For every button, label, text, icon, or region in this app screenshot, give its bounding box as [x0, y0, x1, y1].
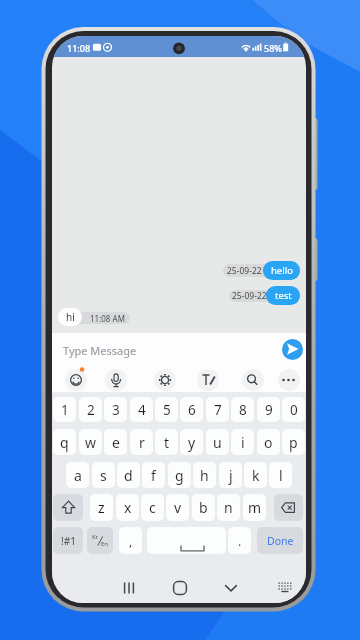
button[interactable]: j [219, 462, 242, 488]
staticText: !#1 [61, 534, 76, 548]
staticText: test [275, 289, 292, 302]
staticText: p [289, 433, 298, 452]
staticText: o [264, 433, 273, 452]
staticText: En [101, 540, 109, 548]
staticText: 9 [265, 401, 273, 419]
button[interactable]: 0 [282, 397, 305, 422]
button[interactable]: o [257, 429, 280, 455]
staticText: h [200, 466, 209, 485]
staticText: u [213, 433, 222, 452]
button[interactable]: 3 [104, 397, 127, 422]
staticText: i [241, 433, 245, 452]
button[interactable] [87, 527, 113, 554]
button[interactable]: test [266, 286, 300, 305]
staticText: n [224, 498, 233, 517]
button[interactable]: z [90, 494, 113, 521]
button[interactable]: 2 [79, 397, 102, 422]
button[interactable] [105, 369, 127, 391]
button[interactable] [197, 369, 219, 391]
staticText: x [124, 498, 132, 517]
staticText: c [149, 498, 156, 517]
button[interactable]: !#1 [53, 527, 83, 554]
staticText: 7 [214, 401, 222, 419]
button[interactable]: m [243, 494, 266, 521]
button[interactable]: 9 [257, 397, 280, 422]
button[interactable]: g [168, 462, 191, 488]
button[interactable]: 7 [206, 397, 229, 422]
button[interactable]: hello [263, 261, 300, 280]
button[interactable] [65, 369, 87, 391]
button[interactable]: x [116, 494, 139, 521]
staticText: v [174, 498, 182, 517]
staticText: r [139, 433, 145, 452]
button[interactable] [147, 527, 226, 554]
staticText: hello [271, 264, 293, 277]
button[interactable] [219, 576, 243, 600]
button[interactable] [168, 576, 192, 600]
button[interactable]: 25-09-22 [229, 290, 281, 302]
button[interactable]: h [193, 462, 216, 488]
button[interactable] [273, 576, 297, 600]
button[interactable]: 1 [53, 397, 76, 422]
staticText: w [85, 433, 97, 452]
button[interactable]: y [180, 429, 203, 455]
staticText: t [164, 433, 170, 452]
button[interactable]: 4 [130, 397, 153, 422]
staticText: 0 [290, 401, 298, 419]
button[interactable]: e [104, 429, 127, 455]
button[interactable] [278, 369, 300, 391]
button[interactable]: q [53, 429, 76, 455]
staticText: Done [267, 534, 294, 548]
button[interactable] [282, 339, 303, 360]
button[interactable]: f [142, 462, 165, 488]
button[interactable]: v [166, 494, 189, 521]
button[interactable]: 25-09-22 [223, 264, 278, 277]
staticText: m [248, 498, 262, 517]
staticText: k [252, 466, 260, 485]
button[interactable]: . [228, 527, 251, 554]
button[interactable] [274, 494, 303, 521]
button[interactable] [117, 576, 141, 600]
staticText: hi [66, 310, 75, 324]
staticText: z [98, 498, 105, 517]
button[interactable] [242, 369, 264, 391]
button[interactable]: a [66, 462, 89, 488]
staticText: d [124, 466, 133, 485]
button[interactable]: 8 [231, 397, 254, 422]
button[interactable]: i [231, 429, 254, 455]
button[interactable]: b [192, 494, 215, 521]
staticText: f [151, 466, 156, 485]
button[interactable] [154, 369, 176, 391]
staticText: 11:08 AM [90, 313, 125, 324]
staticText: 25-09-22 [232, 290, 267, 302]
staticText: 58% [264, 42, 282, 54]
staticText: s [100, 466, 107, 485]
button[interactable]: 11:08 AM [74, 312, 130, 324]
staticText: b [199, 498, 208, 517]
button[interactable]: 5 [155, 397, 178, 422]
button[interactable]: w [79, 429, 102, 455]
staticText: 5 [163, 401, 171, 419]
button[interactable]: c [141, 494, 164, 521]
staticText: 2 [87, 401, 95, 419]
button[interactable]: s [92, 462, 115, 488]
button[interactable]: , [119, 527, 142, 554]
button[interactable]: k [244, 462, 267, 488]
staticText: 11:08 [67, 42, 91, 54]
button[interactable]: u [206, 429, 229, 455]
staticText: 8 [239, 401, 247, 419]
button[interactable]: n [217, 494, 240, 521]
button[interactable]: d [117, 462, 140, 488]
button[interactable]: r [130, 429, 153, 455]
button[interactable]: Done [257, 527, 303, 554]
staticText: Kr [92, 533, 99, 541]
button[interactable]: l [269, 462, 292, 488]
button[interactable]: hi [58, 308, 82, 326]
staticText: 4 [138, 401, 146, 419]
button[interactable] [53, 494, 83, 521]
staticText: y [188, 433, 196, 452]
staticText: 1 [61, 401, 69, 419]
button[interactable]: t [155, 429, 178, 455]
button[interactable]: 6 [180, 397, 203, 422]
button[interactable]: p [282, 429, 305, 455]
